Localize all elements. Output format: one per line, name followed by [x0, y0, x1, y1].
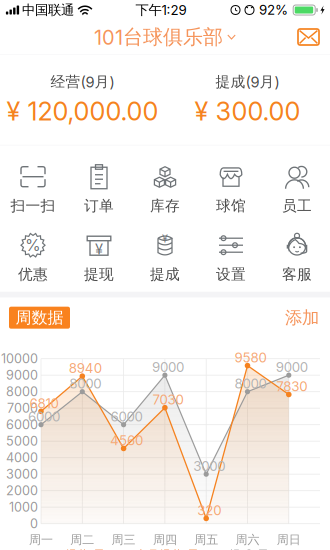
staticText: 扫一扫 — [10, 197, 55, 215]
staticText: 2000 — [6, 483, 38, 498]
button[interactable]: ¥ — [66, 227, 132, 288]
staticText: 经营(9月) — [50, 73, 114, 91]
staticText: 周三 — [112, 532, 136, 547]
staticText: 6000 — [6, 417, 38, 432]
staticText: 9000 — [276, 359, 308, 375]
staticText: 7030 — [152, 392, 183, 408]
staticText: 6000 — [28, 409, 60, 425]
staticText: 320 — [197, 502, 221, 518]
staticText: 周数据 — [15, 308, 63, 328]
staticText: 中国联通 — [22, 2, 74, 18]
staticText: 9000 — [152, 359, 184, 375]
staticText: 球馆 — [216, 197, 246, 215]
staticText: 周六 — [235, 532, 259, 547]
button[interactable]: % — [0, 227, 66, 288]
staticText: 设置 — [216, 265, 246, 284]
staticText: 客服 — [282, 265, 312, 284]
staticText: 提成 — [150, 265, 180, 284]
staticText: 上月经营(元) — [135, 547, 203, 550]
staticText: % — [25, 235, 41, 255]
staticText: 8000 — [234, 376, 266, 392]
staticText: 10000 — [1, 351, 38, 366]
staticText: ¥ 120,000.00 — [6, 96, 158, 127]
button[interactable]: 球馆 — [198, 159, 264, 219]
staticText: 3000 — [6, 466, 38, 482]
staticText: 7000 — [7, 400, 38, 416]
staticText: 优惠 — [18, 265, 48, 284]
staticText: 周日 — [277, 532, 301, 547]
staticText: 周四 — [153, 532, 177, 547]
staticText: 92% — [259, 2, 288, 18]
staticText: 订单 — [84, 197, 114, 215]
staticText: 9580 — [234, 349, 266, 366]
staticText: 添加 — [285, 307, 319, 329]
button[interactable]: 添加 — [274, 307, 330, 329]
staticText: 5000 — [6, 433, 38, 449]
staticText: 4560 — [110, 432, 143, 448]
button[interactable]: 扫一扫 — [0, 159, 66, 219]
button[interactable]: 订单 — [66, 159, 132, 219]
staticText: 9000 — [6, 367, 38, 383]
staticText: ¥ 300.00 — [194, 96, 300, 127]
staticText: ¥ — [162, 232, 168, 245]
staticText: 8000 — [6, 384, 38, 399]
staticText: 提成(9月) — [215, 73, 279, 91]
staticText: 库存 — [150, 197, 180, 215]
staticText: 8940 — [69, 360, 102, 376]
staticText: 下午1:29 — [135, 2, 186, 18]
staticText: ¥ — [95, 240, 103, 258]
button[interactable]: ¥ — [132, 227, 198, 288]
staticText: 3000 — [193, 458, 225, 474]
staticText: 7830 — [276, 378, 307, 394]
button[interactable]: 设置 — [198, 227, 264, 288]
button[interactable]: Messages — [287, 20, 330, 54]
button[interactable]: 客服 — [264, 227, 330, 288]
staticText: 周五 — [194, 532, 218, 547]
button[interactable]: 101台球俱乐部 — [86, 20, 244, 54]
staticText: 提现 — [84, 265, 114, 284]
staticText: 周二 — [70, 532, 94, 547]
staticText: 0 — [30, 516, 38, 531]
staticText: 周一 — [29, 532, 53, 547]
staticText: 101台球俱乐部 — [94, 24, 223, 50]
staticText: 1000 — [9, 499, 38, 515]
staticText: 员工 — [282, 197, 312, 215]
button[interactable]: 周数据 — [9, 307, 70, 329]
staticText: 经营(元) — [65, 547, 109, 550]
staticText: 6810 — [29, 395, 58, 411]
button[interactable]: 库存 — [132, 159, 198, 219]
staticText: 4000 — [6, 450, 38, 465]
staticText: 6000 — [111, 409, 143, 425]
button[interactable]: 员工 — [264, 159, 330, 219]
staticText: 8000 — [69, 376, 101, 392]
staticText: 提成(元) — [229, 547, 273, 550]
